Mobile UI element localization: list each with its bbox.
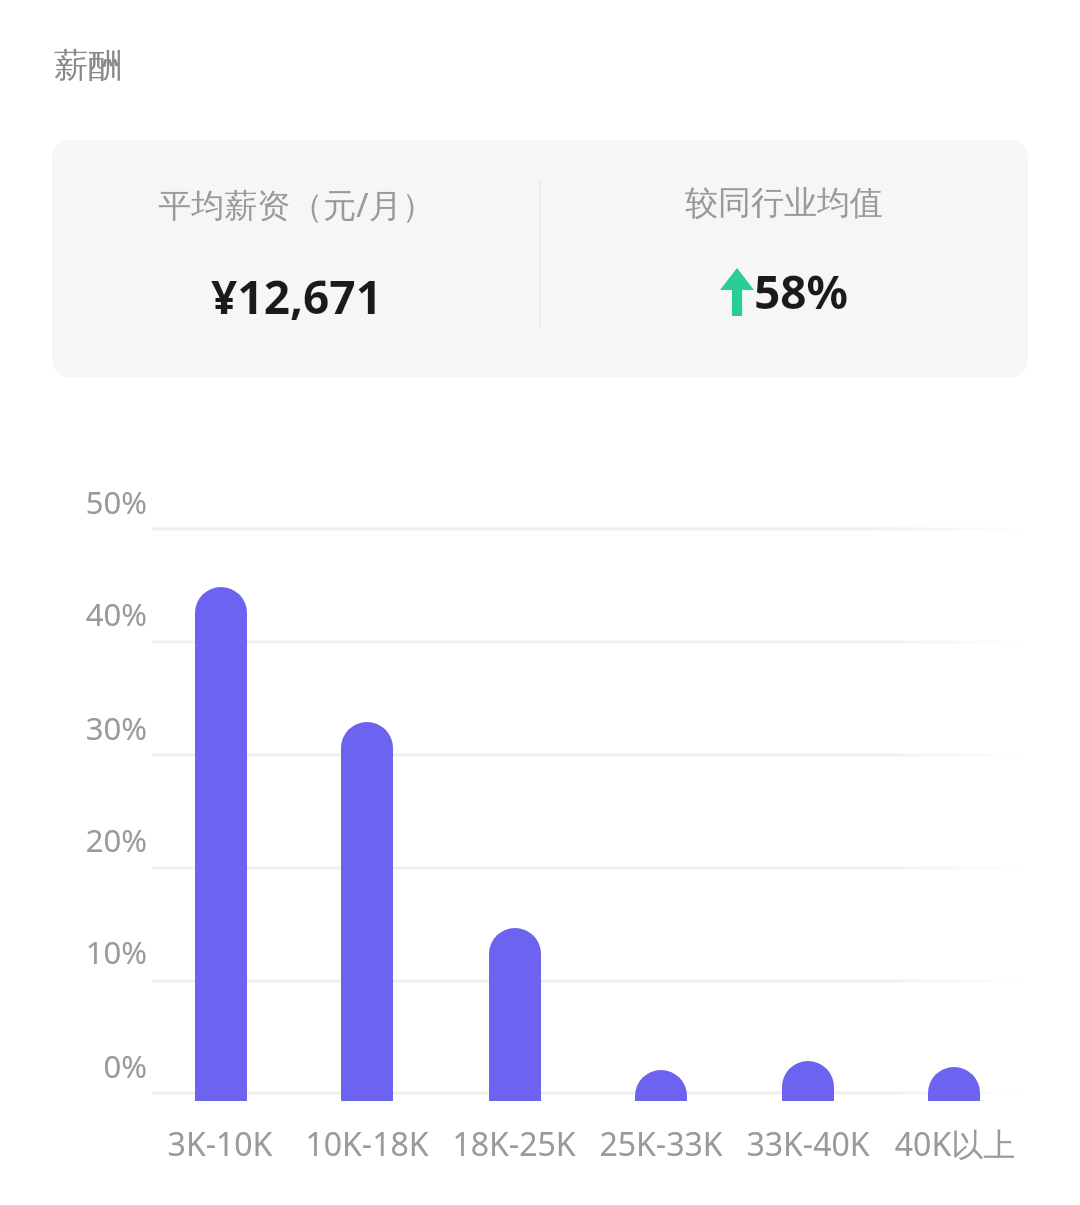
staticText: 40% <box>55 593 147 635</box>
button[interactable]: 平均薪资（元/月） <box>52 140 1028 377</box>
staticText: 平均薪资（元/月） <box>158 182 435 227</box>
staticText: 30% <box>55 707 147 749</box>
staticText: 10K-18K <box>272 1122 462 1166</box>
staticText: 58% <box>754 260 849 323</box>
staticText: 20% <box>55 819 147 861</box>
staticText: 0% <box>55 1045 147 1087</box>
staticText: 薪酬 <box>54 44 122 87</box>
staticText: 33K-40K <box>713 1122 903 1166</box>
other: Increase <box>720 268 754 316</box>
staticText: 25K-33K <box>566 1122 756 1166</box>
staticText: 18K-25K <box>419 1122 609 1166</box>
staticText: 较同行业均值 <box>685 182 883 224</box>
staticText: ¥12,671 <box>211 265 382 328</box>
staticText: 40K以上 <box>860 1122 1050 1166</box>
staticText: 10% <box>55 931 147 973</box>
staticText: 3K-10K <box>125 1122 315 1166</box>
staticText: 50% <box>55 481 147 523</box>
